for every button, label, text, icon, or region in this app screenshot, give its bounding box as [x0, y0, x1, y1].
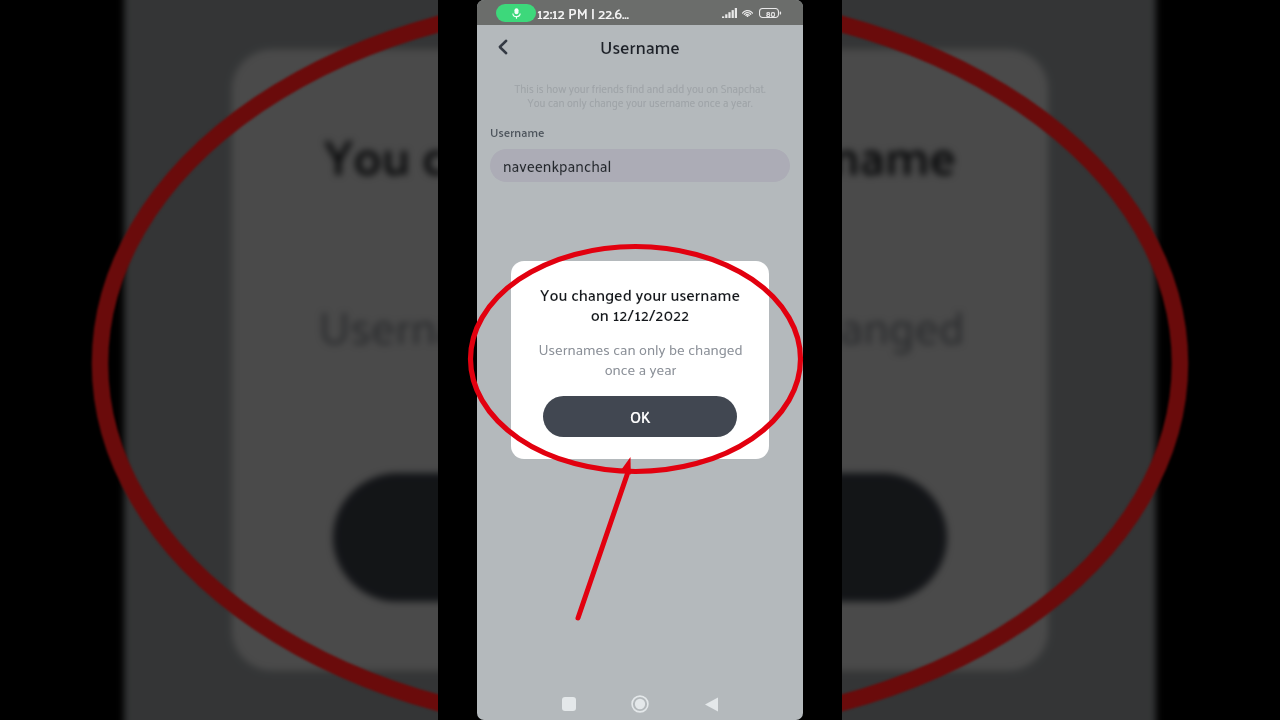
- staticText: Username: [600, 31, 680, 63]
- button[interactable]: Back: [685, 688, 737, 720]
- staticText: You changed your username on 12/12/2022: [323, 109, 956, 259]
- button[interactable]: Recents: [543, 688, 595, 720]
- staticText: OK: [630, 403, 651, 430]
- button[interactable]: naveenkpanchal: [490, 149, 790, 182]
- button[interactable]: OK: [333, 473, 947, 602]
- staticText: naveenkpanchal: [503, 152, 612, 180]
- button[interactable]: Back: [491, 35, 515, 59]
- button[interactable]: OK: [543, 396, 737, 437]
- staticText: Username: [490, 121, 545, 143]
- button[interactable]: Home: [614, 688, 666, 720]
- staticText: 80: [766, 6, 776, 20]
- staticText: OK: [608, 495, 675, 580]
- staticText: You changed your username on 12/12/2022: [540, 280, 740, 328]
- staticText: Usernames can only be changed once a yea…: [538, 336, 743, 382]
- staticText: 12:12 PM | 22.6…: [537, 0, 629, 25]
- staticText: Usernames can only be changed once a yea…: [317, 285, 966, 429]
- staticText: This is how your friends find and add yo…: [483, 79, 797, 113]
